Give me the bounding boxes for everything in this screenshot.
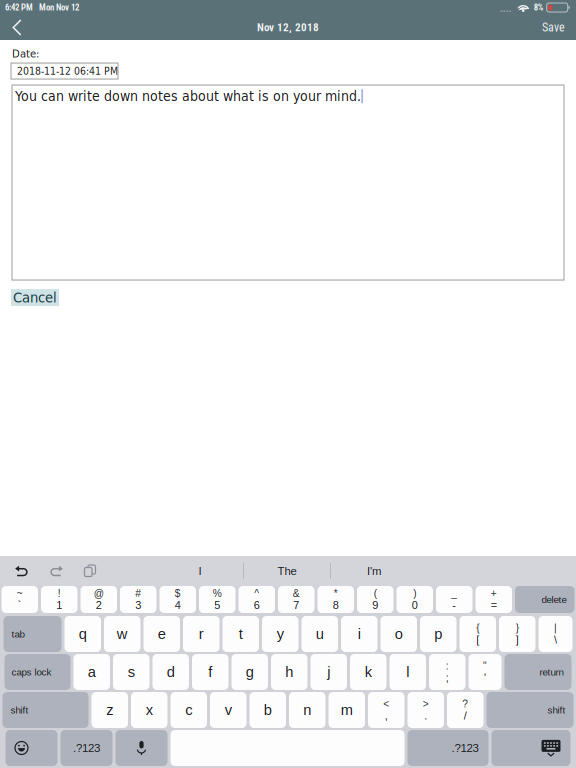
button[interactable]: $ bbox=[159, 586, 196, 613]
button[interactable]: u bbox=[301, 616, 338, 652]
button[interactable]: m bbox=[328, 692, 365, 728]
button[interactable]: e bbox=[143, 616, 180, 652]
staticText: ? bbox=[462, 698, 468, 709]
staticText: . bbox=[424, 710, 427, 722]
button[interactable]: " bbox=[468, 654, 501, 690]
staticText: tab bbox=[11, 628, 24, 639]
staticText: / bbox=[464, 710, 467, 722]
button[interactable]: > bbox=[407, 692, 444, 728]
staticText: } bbox=[516, 622, 519, 633]
button[interactable]: t bbox=[222, 616, 259, 652]
staticText: ' bbox=[484, 672, 486, 684]
button[interactable]: l bbox=[389, 654, 426, 690]
button[interactable]: < bbox=[368, 692, 404, 728]
button[interactable]: I bbox=[157, 556, 243, 585]
button[interactable]: # bbox=[120, 586, 156, 613]
staticText: u bbox=[316, 626, 324, 642]
button[interactable]: Undo bbox=[5, 558, 39, 584]
button[interactable]: delete bbox=[515, 586, 574, 613]
button[interactable]: ) bbox=[396, 586, 433, 613]
button[interactable]: { bbox=[459, 616, 496, 652]
staticText: caps lock bbox=[11, 666, 51, 677]
button[interactable]: o bbox=[380, 616, 417, 652]
staticText: return bbox=[539, 666, 563, 677]
button[interactable]: q bbox=[64, 616, 101, 652]
button[interactable]: Emoji bbox=[5, 730, 57, 766]
button[interactable]: ? bbox=[447, 692, 483, 728]
button[interactable]: f bbox=[192, 654, 228, 690]
staticText: p bbox=[434, 626, 442, 642]
staticText: 5 bbox=[214, 599, 220, 611]
staticText: , bbox=[385, 710, 388, 722]
button[interactable]: a bbox=[73, 654, 110, 690]
button[interactable]: * bbox=[317, 586, 354, 613]
button[interactable]: I'm bbox=[331, 556, 417, 585]
staticText: " bbox=[483, 660, 487, 671]
staticText: Date: bbox=[12, 47, 39, 60]
staticText: ~ bbox=[17, 588, 23, 599]
staticText: & bbox=[293, 588, 300, 599]
button[interactable]: Back bbox=[0, 15, 34, 40]
staticText: # bbox=[135, 588, 141, 599]
button[interactable]: Cancel bbox=[11, 289, 59, 306]
staticText: Nov 12, 2018 bbox=[257, 21, 319, 34]
staticText: ; bbox=[446, 672, 449, 684]
button[interactable]: shift bbox=[486, 692, 573, 728]
staticText: : bbox=[446, 660, 449, 671]
staticText: 7 bbox=[293, 599, 299, 611]
button[interactable]: n bbox=[289, 692, 325, 728]
button[interactable]: Dictate bbox=[115, 730, 167, 766]
button[interactable]: s bbox=[113, 654, 149, 690]
button[interactable]: w bbox=[104, 616, 140, 652]
staticText: delete bbox=[541, 594, 566, 605]
button[interactable]: g bbox=[231, 654, 268, 690]
button[interactable]: b bbox=[249, 692, 286, 728]
button[interactable]: Save bbox=[530, 15, 576, 40]
staticText: \ bbox=[554, 634, 557, 646]
staticText: * bbox=[334, 588, 338, 599]
button[interactable]: ( bbox=[357, 586, 393, 613]
staticText: .?123 bbox=[73, 742, 100, 754]
button[interactable]: x bbox=[131, 692, 167, 728]
button[interactable]: Paste bbox=[73, 558, 107, 584]
button[interactable]: .?123 bbox=[60, 730, 112, 766]
button[interactable]: | bbox=[538, 616, 572, 652]
button[interactable]: : bbox=[429, 654, 465, 690]
button[interactable]: @ bbox=[80, 586, 117, 613]
staticText: 2 bbox=[96, 599, 102, 611]
button[interactable]: caps lock bbox=[4, 654, 70, 690]
button[interactable]: d bbox=[152, 654, 189, 690]
button[interactable]: j bbox=[310, 654, 347, 690]
staticText: { bbox=[476, 622, 479, 633]
button[interactable]: _ bbox=[436, 586, 472, 613]
button[interactable]: h bbox=[271, 654, 307, 690]
button[interactable]: The bbox=[244, 556, 330, 585]
button[interactable]: r bbox=[183, 616, 219, 652]
button[interactable]: ~ bbox=[1, 586, 38, 613]
staticText: .?123 bbox=[451, 742, 478, 754]
button[interactable]: k bbox=[350, 654, 386, 690]
button[interactable]: y bbox=[262, 616, 298, 652]
button[interactable]: Hide keyboard bbox=[491, 730, 570, 766]
button[interactable]: ! bbox=[41, 586, 77, 613]
button[interactable]: return bbox=[504, 654, 571, 690]
button[interactable]: } bbox=[499, 616, 535, 652]
button[interactable]: Redo bbox=[39, 558, 73, 584]
staticText: + bbox=[491, 588, 497, 599]
button[interactable]: shift bbox=[2, 692, 88, 728]
button[interactable]: z bbox=[91, 692, 128, 728]
button[interactable]: ^ bbox=[238, 586, 275, 613]
button[interactable]: v bbox=[210, 692, 246, 728]
button[interactable]: .?123 bbox=[407, 730, 488, 766]
staticText: n bbox=[303, 702, 311, 718]
button[interactable]: c bbox=[170, 692, 207, 728]
staticText: - bbox=[452, 599, 456, 611]
staticText: Save bbox=[542, 20, 565, 35]
button[interactable]: i bbox=[341, 616, 377, 652]
button[interactable]: tab bbox=[3, 616, 61, 652]
button[interactable]: & bbox=[278, 586, 314, 613]
button[interactable]: % bbox=[199, 586, 235, 613]
button[interactable]: + bbox=[475, 586, 512, 613]
button[interactable]: p bbox=[420, 616, 456, 652]
